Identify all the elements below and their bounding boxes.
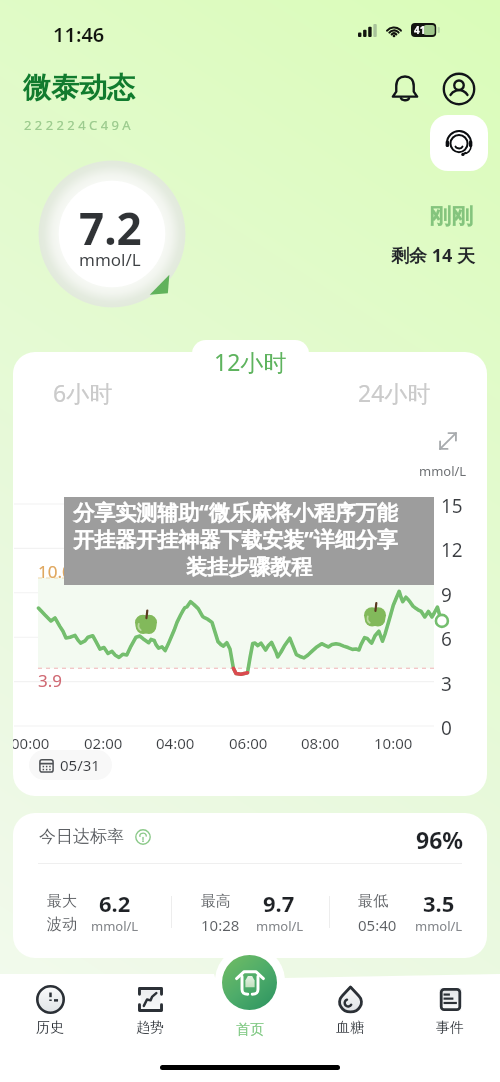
- staticText: 0: [441, 715, 452, 741]
- staticText: mmol/L: [419, 462, 467, 480]
- button[interactable]: Notifications: [386, 70, 424, 108]
- button[interactable]: Home: [222, 955, 277, 1010]
- staticText: 今日达标率: [39, 826, 124, 847]
- staticText: 最大: [47, 892, 77, 911]
- staticText: 历史: [36, 1019, 64, 1037]
- staticText: 血糖: [336, 1019, 364, 1037]
- staticText: 02:00: [84, 733, 123, 753]
- button[interactable]: 血糖: [326, 985, 374, 1039]
- staticText: 9.7: [263, 888, 295, 918]
- button[interactable]: Customer service: [430, 115, 488, 171]
- staticText: 分享实测辅助“微乐麻将小程序万能: [73, 498, 398, 527]
- staticText: 04:00: [156, 733, 195, 753]
- staticText: 41: [414, 23, 426, 37]
- staticText: 剩余 14 天: [0, 243, 475, 268]
- staticText: 首页: [0, 1021, 500, 1039]
- button[interactable]: 事件: [426, 985, 474, 1039]
- staticText: 装挂步骤教程: [64, 554, 434, 580]
- staticText: 9: [441, 582, 452, 608]
- staticText: 趋势: [136, 1019, 164, 1037]
- staticText: 刚刚: [0, 203, 473, 231]
- staticText: mmol/L: [79, 248, 141, 271]
- staticText: mmol/L: [415, 917, 463, 935]
- staticText: 10.0: [38, 560, 72, 583]
- button[interactable]: Expand chart: [437, 430, 459, 452]
- staticText: mmol/L: [91, 917, 139, 935]
- staticText: mmol/L: [256, 917, 304, 935]
- button[interactable]: 05/31: [29, 750, 112, 780]
- button[interactable]: 历史: [26, 985, 74, 1039]
- staticText: 波动: [47, 915, 77, 934]
- staticText: 222224C49A: [24, 116, 135, 134]
- staticText: 08:00: [301, 733, 340, 753]
- staticText: 96%: [416, 824, 464, 855]
- button[interactable]: Help: [135, 829, 151, 845]
- staticText: 最低: [358, 892, 388, 911]
- staticText: 10:28: [201, 915, 240, 935]
- staticText: 05:40: [358, 915, 397, 935]
- staticText: 6: [441, 626, 452, 652]
- staticText: 06:00: [229, 733, 268, 753]
- staticText: 00:00: [13, 733, 50, 753]
- staticText: 微泰动态: [23, 70, 135, 105]
- staticText: 3.5: [423, 888, 455, 918]
- staticText: 最高: [201, 892, 231, 911]
- staticText: 3.9: [38, 669, 63, 692]
- staticText: 3: [441, 671, 452, 697]
- staticText: 12: [441, 537, 463, 563]
- staticText: 15: [441, 493, 463, 519]
- staticText: 7.2: [79, 198, 142, 258]
- staticText: 12小时: [214, 346, 287, 377]
- staticText: 开挂器开挂神器下载安装”详细分享: [73, 525, 398, 554]
- button[interactable]: 趋势: [126, 985, 174, 1039]
- staticText: 05/31: [60, 755, 100, 775]
- staticText: 事件: [436, 1019, 464, 1037]
- staticText: 10:00: [374, 733, 413, 753]
- staticText: 11:46: [53, 21, 105, 48]
- staticText: 6小时: [53, 377, 113, 408]
- button[interactable]: Profile: [440, 70, 478, 108]
- staticText: 24小时: [358, 377, 431, 408]
- staticText: 6.2: [99, 888, 131, 918]
- button[interactable]: 12小时: [192, 340, 309, 383]
